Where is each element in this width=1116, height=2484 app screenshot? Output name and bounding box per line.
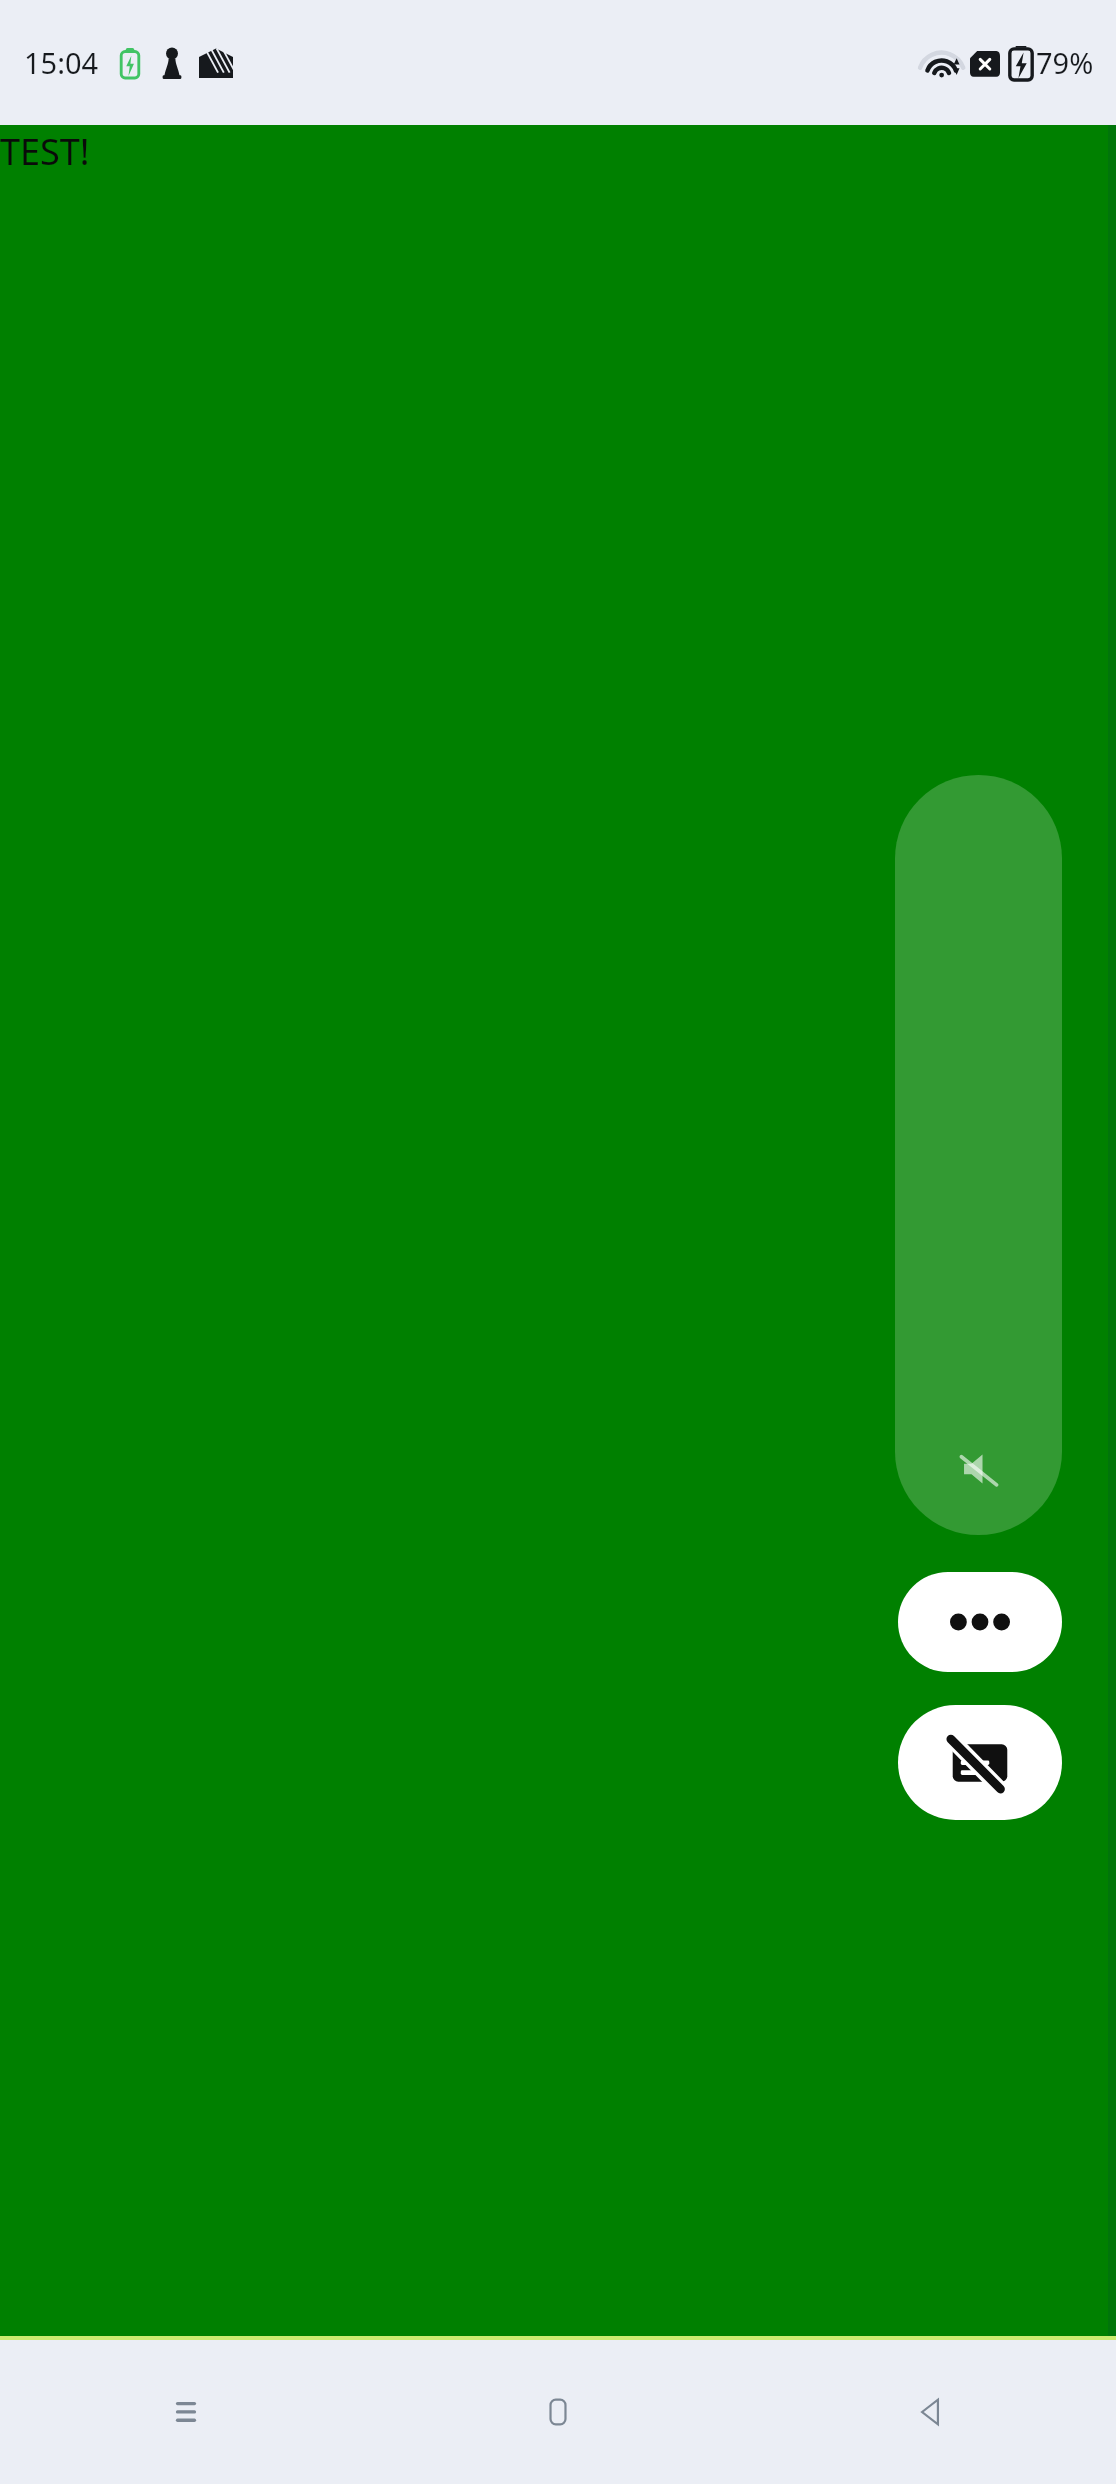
button[interactable]: Home (372, 2340, 744, 2484)
button[interactable]: Recents (0, 2340, 372, 2484)
button[interactable]: Back (744, 2340, 1116, 2484)
staticText: 15:04 (24, 43, 99, 82)
staticText: TEST! (0, 127, 90, 176)
staticText: 79% (1036, 43, 1094, 82)
button[interactable] (895, 775, 1062, 1535)
button[interactable]: More options (898, 1572, 1062, 1672)
button[interactable]: Captions off (898, 1705, 1062, 1820)
